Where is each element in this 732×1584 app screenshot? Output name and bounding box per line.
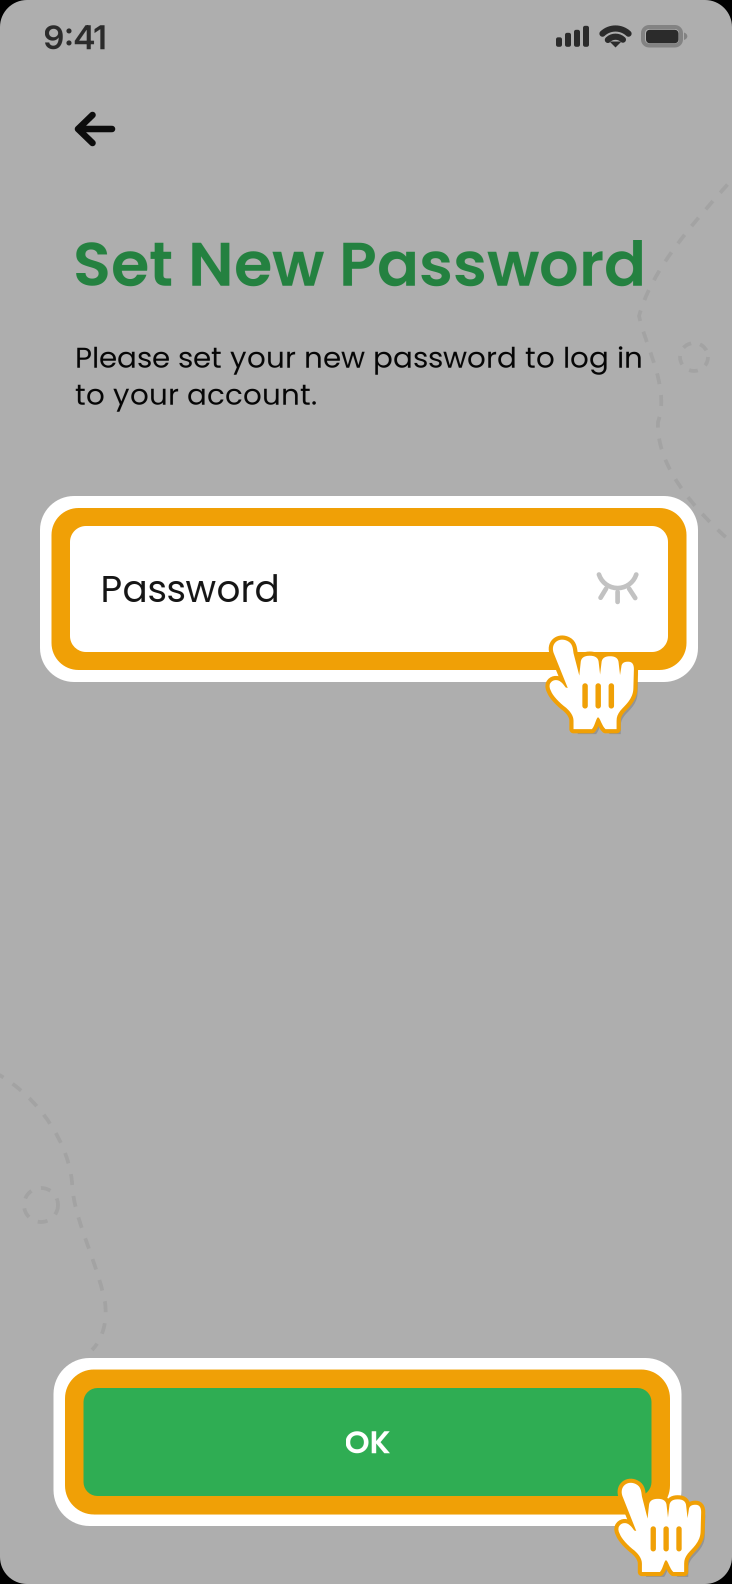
staticText: OK: [344, 1420, 390, 1464]
button[interactable]: Back: [53, 87, 137, 171]
staticText: 9:41: [43, 17, 106, 57]
button[interactable]: Password: [40, 496, 698, 682]
staticText: Set New Password: [73, 220, 646, 307]
staticText: Password: [100, 563, 279, 615]
staticText: Please set your new password to log in t…: [75, 337, 643, 415]
button[interactable]: OK: [53, 1358, 681, 1526]
